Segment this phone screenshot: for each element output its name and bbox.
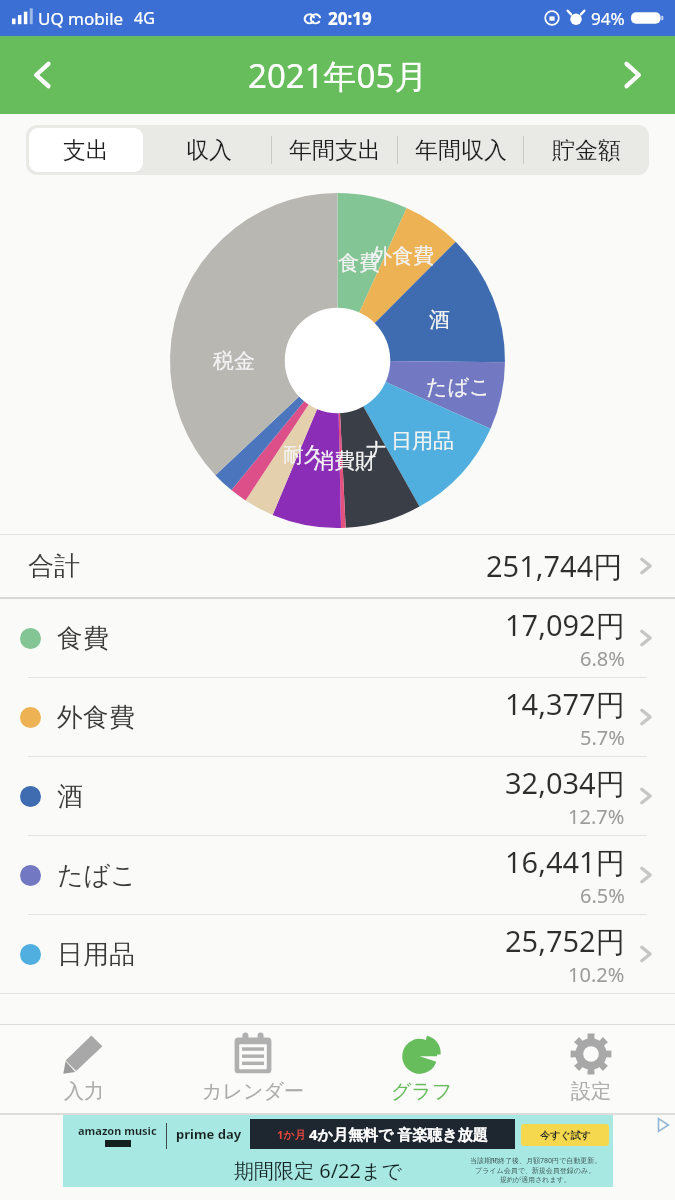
staticText: 12.7% [568, 803, 625, 830]
staticText: 設定 [571, 1079, 611, 1104]
staticText: 税金 [213, 348, 255, 374]
staticText: 年間収入 [415, 136, 507, 165]
button[interactable]: 年間支出 [272, 125, 397, 175]
staticText: ナ [366, 436, 388, 462]
staticText: 2021年05月 [248, 53, 428, 98]
button[interactable]: 酒 [0, 757, 675, 835]
staticText: 25,752円 [505, 921, 625, 961]
staticText: 6.8% [580, 645, 625, 672]
button[interactable]: たばこ [0, 836, 675, 914]
staticText: 食費 [57, 622, 109, 655]
button[interactable]: 外食費 [0, 678, 675, 756]
staticText: 5.7% [580, 724, 625, 751]
staticText: たばこ [57, 859, 137, 892]
button[interactable]: Settings [506, 1025, 675, 1113]
staticText: プライム会員で、新規会員登録のみ。 [475, 1166, 596, 1175]
staticText: 1か月 [277, 1127, 306, 1142]
staticText: 収入 [186, 136, 232, 165]
staticText: 32,034円 [505, 763, 625, 803]
staticText: 当該期間終了後、月額780円で自動更新。 [470, 1156, 602, 1166]
staticText: 6.5% [580, 882, 625, 909]
staticText: 17,092円 [505, 605, 625, 645]
other: Calendar [230, 1031, 276, 1077]
other: Graph [399, 1031, 445, 1077]
button[interactable]: 合計 [0, 535, 675, 597]
staticText: 日用品 [57, 938, 135, 971]
staticText: 10.2% [568, 961, 625, 988]
staticText: 消費財 [313, 448, 376, 474]
staticText: prime day [176, 1125, 242, 1143]
staticText: 4G [134, 7, 155, 29]
button[interactable]: 収入 [146, 125, 271, 175]
button[interactable]: Calendar [168, 1025, 337, 1113]
other: Ad info [654, 1116, 672, 1134]
staticText: 外食費 [57, 701, 135, 734]
staticText: UQ mobile [38, 7, 124, 30]
staticText: 251,744円 [486, 546, 623, 586]
staticText: amazon music [78, 1123, 157, 1138]
button[interactable]: Next month [589, 36, 675, 114]
staticText: 酒 [429, 307, 450, 333]
staticText: 年間支出 [289, 136, 381, 165]
staticText: 今すぐ試す [540, 1129, 591, 1142]
button[interactable]: 日用品 [0, 915, 675, 993]
staticText: グラフ [391, 1079, 453, 1104]
other: Input [61, 1031, 107, 1077]
staticText: 合計 [28, 550, 80, 583]
button[interactable]: amazon music [63, 1115, 613, 1187]
button[interactable]: Input [0, 1025, 168, 1113]
staticText: 支出 [63, 136, 109, 165]
staticText: 外食費 [371, 243, 434, 269]
button[interactable]: 貯金額 [524, 125, 649, 175]
staticText: 4か月無料で 音楽聴き放題 [309, 1124, 488, 1144]
staticText: 貯金額 [552, 136, 621, 165]
other: Settings [568, 1031, 614, 1077]
staticText: 14,377円 [505, 684, 625, 724]
staticText: 日用品 [391, 428, 454, 454]
staticText: カレンダー [202, 1079, 304, 1104]
staticText: 食費 [338, 250, 380, 276]
staticText: たばこ [426, 374, 491, 400]
staticText: 耐久 [283, 442, 325, 468]
staticText: 94% [591, 7, 625, 30]
button[interactable]: Previous month [0, 36, 86, 114]
staticText: 20:19 [328, 7, 372, 30]
staticText: 酒 [57, 780, 83, 813]
staticText: 入力 [64, 1079, 104, 1104]
button[interactable]: Graph [337, 1025, 506, 1113]
button[interactable]: 年間収入 [398, 125, 523, 175]
button[interactable]: 支出 [29, 128, 143, 172]
staticText: 期間限定 6/22まで [234, 1157, 402, 1184]
staticText: 16,441円 [505, 842, 625, 882]
button[interactable]: 食費 [0, 599, 675, 677]
staticText: 規約が適用されます。 [500, 1175, 571, 1184]
